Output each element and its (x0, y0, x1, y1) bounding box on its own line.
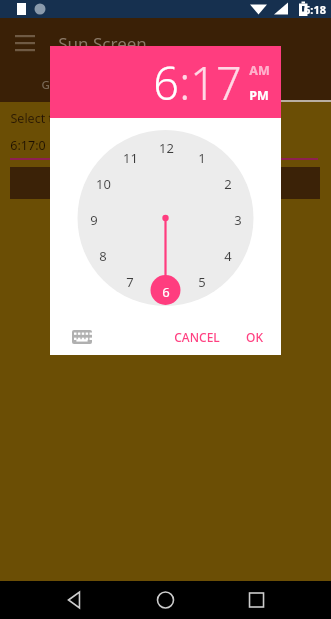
staticText: Select the time below to be reminded at. (10, 110, 248, 127)
staticText: 10 (96, 175, 111, 193)
button[interactable] (10, 167, 320, 199)
staticText: AM (249, 62, 270, 79)
button[interactable]: GENERAL INFO (0, 68, 165, 102)
staticText: 1 (198, 149, 206, 167)
staticText: Sun Screen (58, 32, 147, 55)
staticText: 9 (90, 211, 98, 229)
staticText: GENERAL INFO (41, 77, 124, 93)
staticText: 7 (126, 273, 134, 291)
button[interactable]: OK (240, 323, 269, 351)
button[interactable]: REMINDER (165, 68, 331, 102)
button[interactable]: Switch to keyboard input (69, 324, 95, 350)
staticText: 3 (234, 211, 242, 229)
button[interactable]: PM (249, 87, 269, 104)
staticText: REMINDER (218, 77, 278, 93)
staticText: 2 (224, 175, 232, 193)
button[interactable]: AM (249, 62, 270, 79)
staticText: 6:18 (304, 2, 326, 17)
staticText: OK (246, 329, 263, 345)
staticText: CANCEL (174, 329, 220, 345)
staticText: 6:17:0 (10, 137, 46, 154)
staticText: 4 (224, 247, 232, 265)
button[interactable]: Open navigation menu (8, 26, 42, 60)
staticText: 6 (153, 52, 179, 113)
staticText: 12 (159, 139, 174, 157)
staticText: 8 (99, 247, 107, 265)
staticText: :17 (179, 52, 242, 113)
staticText: 11 (123, 149, 138, 167)
staticText: PM (249, 87, 269, 104)
staticText: 5 (198, 273, 206, 291)
button[interactable]: CANCEL (168, 323, 226, 351)
staticText: 6 (162, 283, 170, 301)
